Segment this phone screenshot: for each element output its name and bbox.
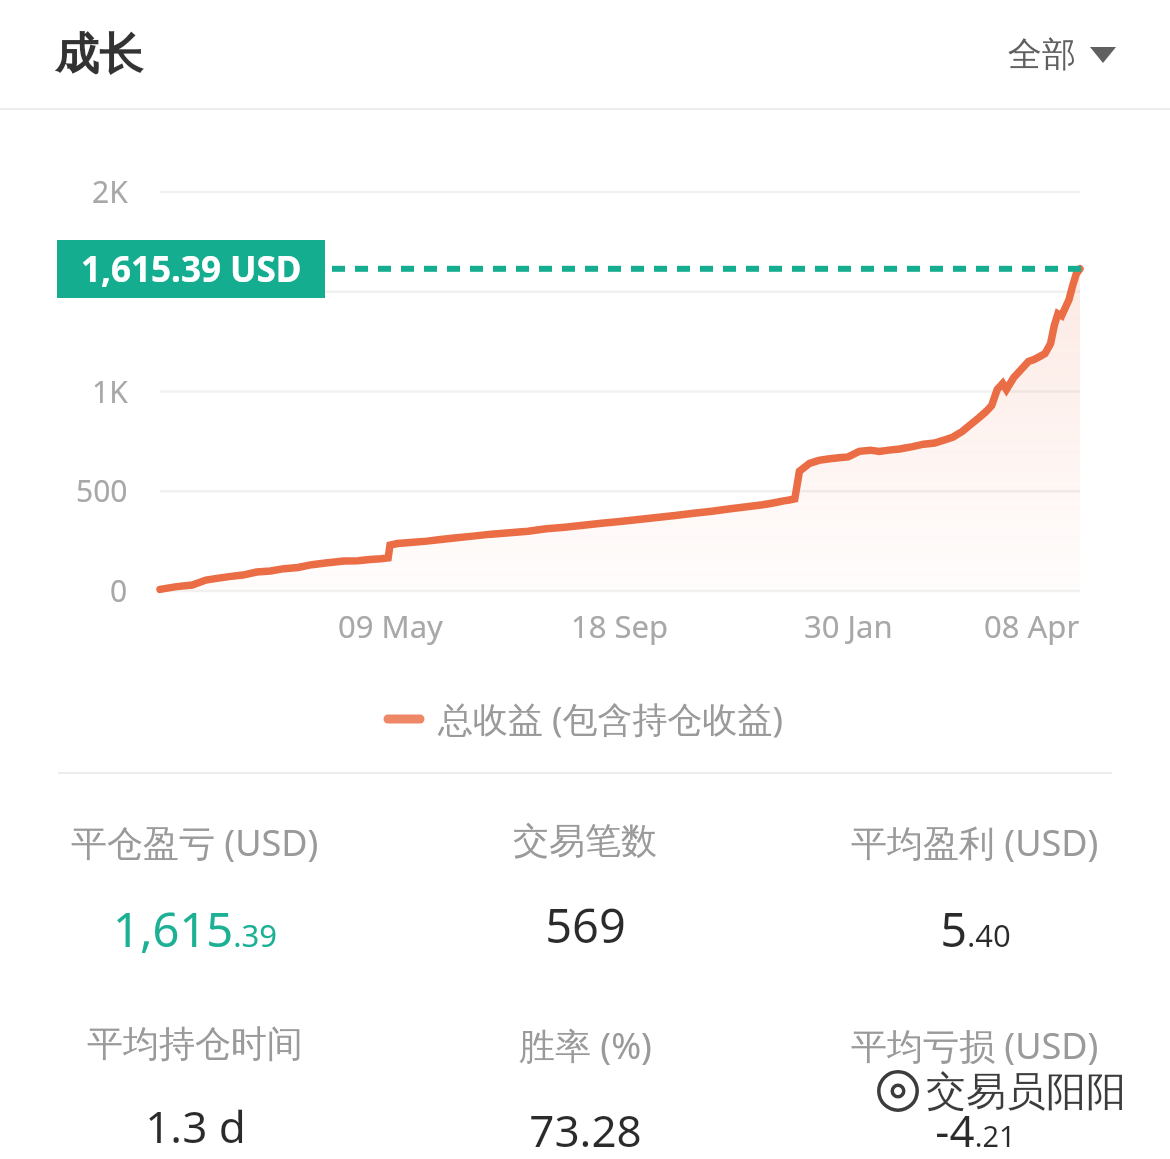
staticText: 2K xyxy=(92,171,128,212)
staticText: 1,615.39 xyxy=(113,897,277,961)
staticText: 交易笔数 xyxy=(513,818,657,863)
staticText: 08 Apr xyxy=(984,605,1080,647)
button[interactable]: 胜率 (%) xyxy=(390,1021,780,1159)
staticText: 总收益 (包含持仓收益) xyxy=(438,695,784,743)
staticText: 500 xyxy=(76,470,128,511)
staticText: 30 Jan xyxy=(804,605,893,647)
staticText: -4.21 xyxy=(935,1100,1016,1159)
staticText: 1,615.39 USD xyxy=(81,245,302,293)
staticText: 09 May xyxy=(338,605,443,647)
button[interactable]: 平仓盈亏 (USD) xyxy=(0,818,390,961)
button[interactable]: 1,615.39 USD xyxy=(57,240,325,298)
staticText: 平均盈利 (USD) xyxy=(851,818,1099,867)
staticText: 全部 xyxy=(1008,33,1076,76)
button[interactable]: 交易笔数 xyxy=(390,818,780,957)
staticText: 73.28 xyxy=(529,1100,642,1159)
staticText: 18 Sep xyxy=(571,605,669,647)
button[interactable]: 平均亏损 (USD) xyxy=(780,1021,1170,1159)
other: Filter xyxy=(1090,47,1116,63)
staticText: 平均持仓时间 xyxy=(87,1021,303,1066)
staticText: 1.3 d xyxy=(145,1096,246,1156)
staticText: 平仓盈亏 (USD) xyxy=(71,818,319,867)
staticText: 569 xyxy=(545,893,626,957)
staticText: 1K xyxy=(92,371,128,412)
staticText: 平均亏损 (USD) xyxy=(851,1021,1099,1070)
button[interactable]: 平均持仓时间 xyxy=(0,1021,390,1156)
staticText: 胜率 (%) xyxy=(519,1021,652,1070)
staticText: 5.40 xyxy=(940,897,1011,961)
button[interactable]: 平均盈利 (USD) xyxy=(780,818,1170,961)
staticText: 成长 xyxy=(55,27,143,82)
button[interactable]: 全部 xyxy=(1000,23,1124,86)
staticText: 0 xyxy=(110,570,128,611)
staticText: 交易员阳阳 xyxy=(926,1066,1126,1116)
